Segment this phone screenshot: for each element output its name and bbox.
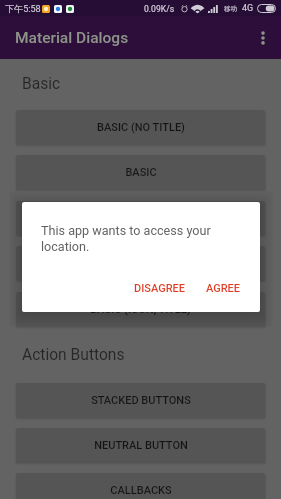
staticText: CALLBACKS [110,484,172,497]
staticText: AGREE [206,282,241,295]
staticText: Action Buttons [22,346,125,364]
staticText: BASIC [125,166,157,179]
button[interactable]: BASIC (ICON, TITLE) [16,292,265,327]
button[interactable]: BASIC (STACKED BUTTONS) [16,201,265,236]
button[interactable]: BASIC [16,155,265,190]
staticText: DISAGREE [134,282,185,295]
button[interactable]: AGREE [198,278,249,299]
button[interactable]: STACKED BUTTONS [16,383,265,418]
button[interactable]: DISAGREE [126,278,193,299]
staticText: 4G [242,3,254,14]
button[interactable]: NEUTRAL BUTTON [16,428,265,463]
staticText: NEUTRAL BUTTON [94,439,188,452]
button[interactable]: BASIC (LONG CONTENT) [16,246,265,281]
button[interactable]: BASIC (NO TITLE) [16,110,265,145]
staticText: Material Dialogs [15,29,129,47]
staticText: 移动 [224,5,238,13]
staticText: BASIC (NO TITLE) [97,121,185,134]
button[interactable]: More options [245,20,281,56]
staticText: 0.09K/s [144,4,175,14]
staticText: 下午5:58 [5,3,41,14]
button[interactable]: CALLBACKS [16,473,265,499]
staticText: This app wants to access your location. [41,223,221,254]
staticText: BASIC (ICON, TITLE) [90,303,191,316]
staticText: Basic [22,75,61,93]
staticText: STACKED BUTTONS [91,394,191,407]
